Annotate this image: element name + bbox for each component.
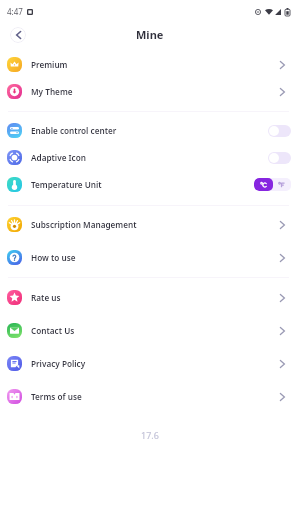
- button[interactable]: Subscription Management: [0, 208, 300, 241]
- staticText: Adaptive Icon: [31, 152, 86, 163]
- staticText: Terms of use: [31, 391, 82, 402]
- button[interactable]: Contact Us: [0, 314, 300, 347]
- button[interactable]: Temperature Unit: [0, 171, 300, 198]
- staticText: Mine: [136, 27, 164, 42]
- button[interactable]: Celsius: [254, 178, 273, 191]
- button[interactable]: Premium: [0, 51, 300, 78]
- button[interactable]: Toggle Adaptive Icon: [268, 152, 291, 164]
- staticText: How to use: [31, 252, 76, 263]
- button[interactable]: Back: [10, 27, 26, 43]
- staticText: Enable control center: [31, 125, 117, 136]
- staticText: Premium: [31, 59, 68, 70]
- staticText: Temperature Unit: [31, 179, 102, 190]
- staticText: 4:47: [7, 6, 23, 17]
- button[interactable]: Rate us: [0, 281, 300, 314]
- staticText: Subscription Management: [31, 219, 137, 230]
- button[interactable]: Privacy Policy: [0, 347, 300, 380]
- button[interactable]: My Theme: [0, 78, 300, 105]
- button[interactable]: Enable control center: [0, 117, 300, 144]
- button[interactable]: Fahrenheit: [273, 178, 291, 191]
- staticText: Privacy Policy: [31, 358, 86, 369]
- staticText: Rate us: [31, 292, 61, 303]
- button[interactable]: Toggle Enable control center: [268, 125, 291, 137]
- staticText: 17.6: [141, 429, 159, 441]
- button[interactable]: How to use: [0, 241, 300, 274]
- staticText: Contact Us: [31, 325, 75, 336]
- button[interactable]: Terms of use: [0, 380, 300, 413]
- button[interactable]: Adaptive Icon: [0, 144, 300, 171]
- staticText: My Theme: [31, 86, 73, 97]
